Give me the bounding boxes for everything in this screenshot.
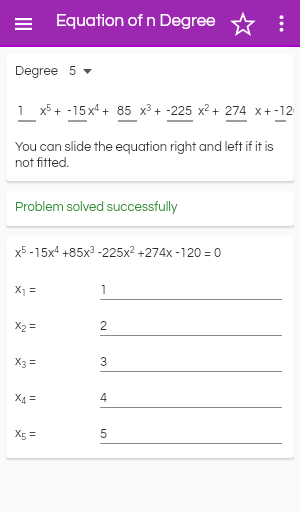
button[interactable]: More options <box>269 11 293 35</box>
staticText: -120 <box>274 104 294 117</box>
staticText: x4 = <box>15 390 37 406</box>
staticText: 1 <box>17 104 25 117</box>
button[interactable]: Menu <box>11 12 35 36</box>
staticText: x5 + <box>40 104 62 118</box>
staticText: x4 + <box>88 104 110 118</box>
staticText: x + <box>255 104 272 117</box>
staticText: x2 + <box>198 104 220 118</box>
staticText: -15 <box>67 104 86 117</box>
staticText: x5 -15x4 +85x3 -225x2 +274x -120 = 0 <box>15 246 222 260</box>
button[interactable]: Favorite <box>230 11 256 37</box>
staticText: 5 <box>100 427 108 440</box>
staticText: x2 = <box>15 318 37 334</box>
staticText: Equation of n Degree <box>56 12 216 30</box>
staticText: x3 + <box>140 104 162 118</box>
staticText: You can slide the equation right and lef… <box>15 140 274 169</box>
staticText: x3 = <box>15 354 37 370</box>
staticText: 1 <box>100 283 108 296</box>
staticText: 85 <box>117 104 132 117</box>
staticText: x5 = <box>15 426 37 442</box>
staticText: 2 <box>100 319 108 332</box>
staticText: x1 = <box>15 282 37 298</box>
staticText: -225 <box>166 104 193 117</box>
staticText: 274 <box>225 104 247 117</box>
staticText: 4 <box>100 391 108 404</box>
staticText: 5 <box>69 64 77 77</box>
staticText: Degree <box>15 64 58 77</box>
staticText: Problem solved successfully <box>15 200 178 213</box>
button[interactable]: Degree <box>13 62 94 79</box>
staticText: 3 <box>100 355 108 368</box>
